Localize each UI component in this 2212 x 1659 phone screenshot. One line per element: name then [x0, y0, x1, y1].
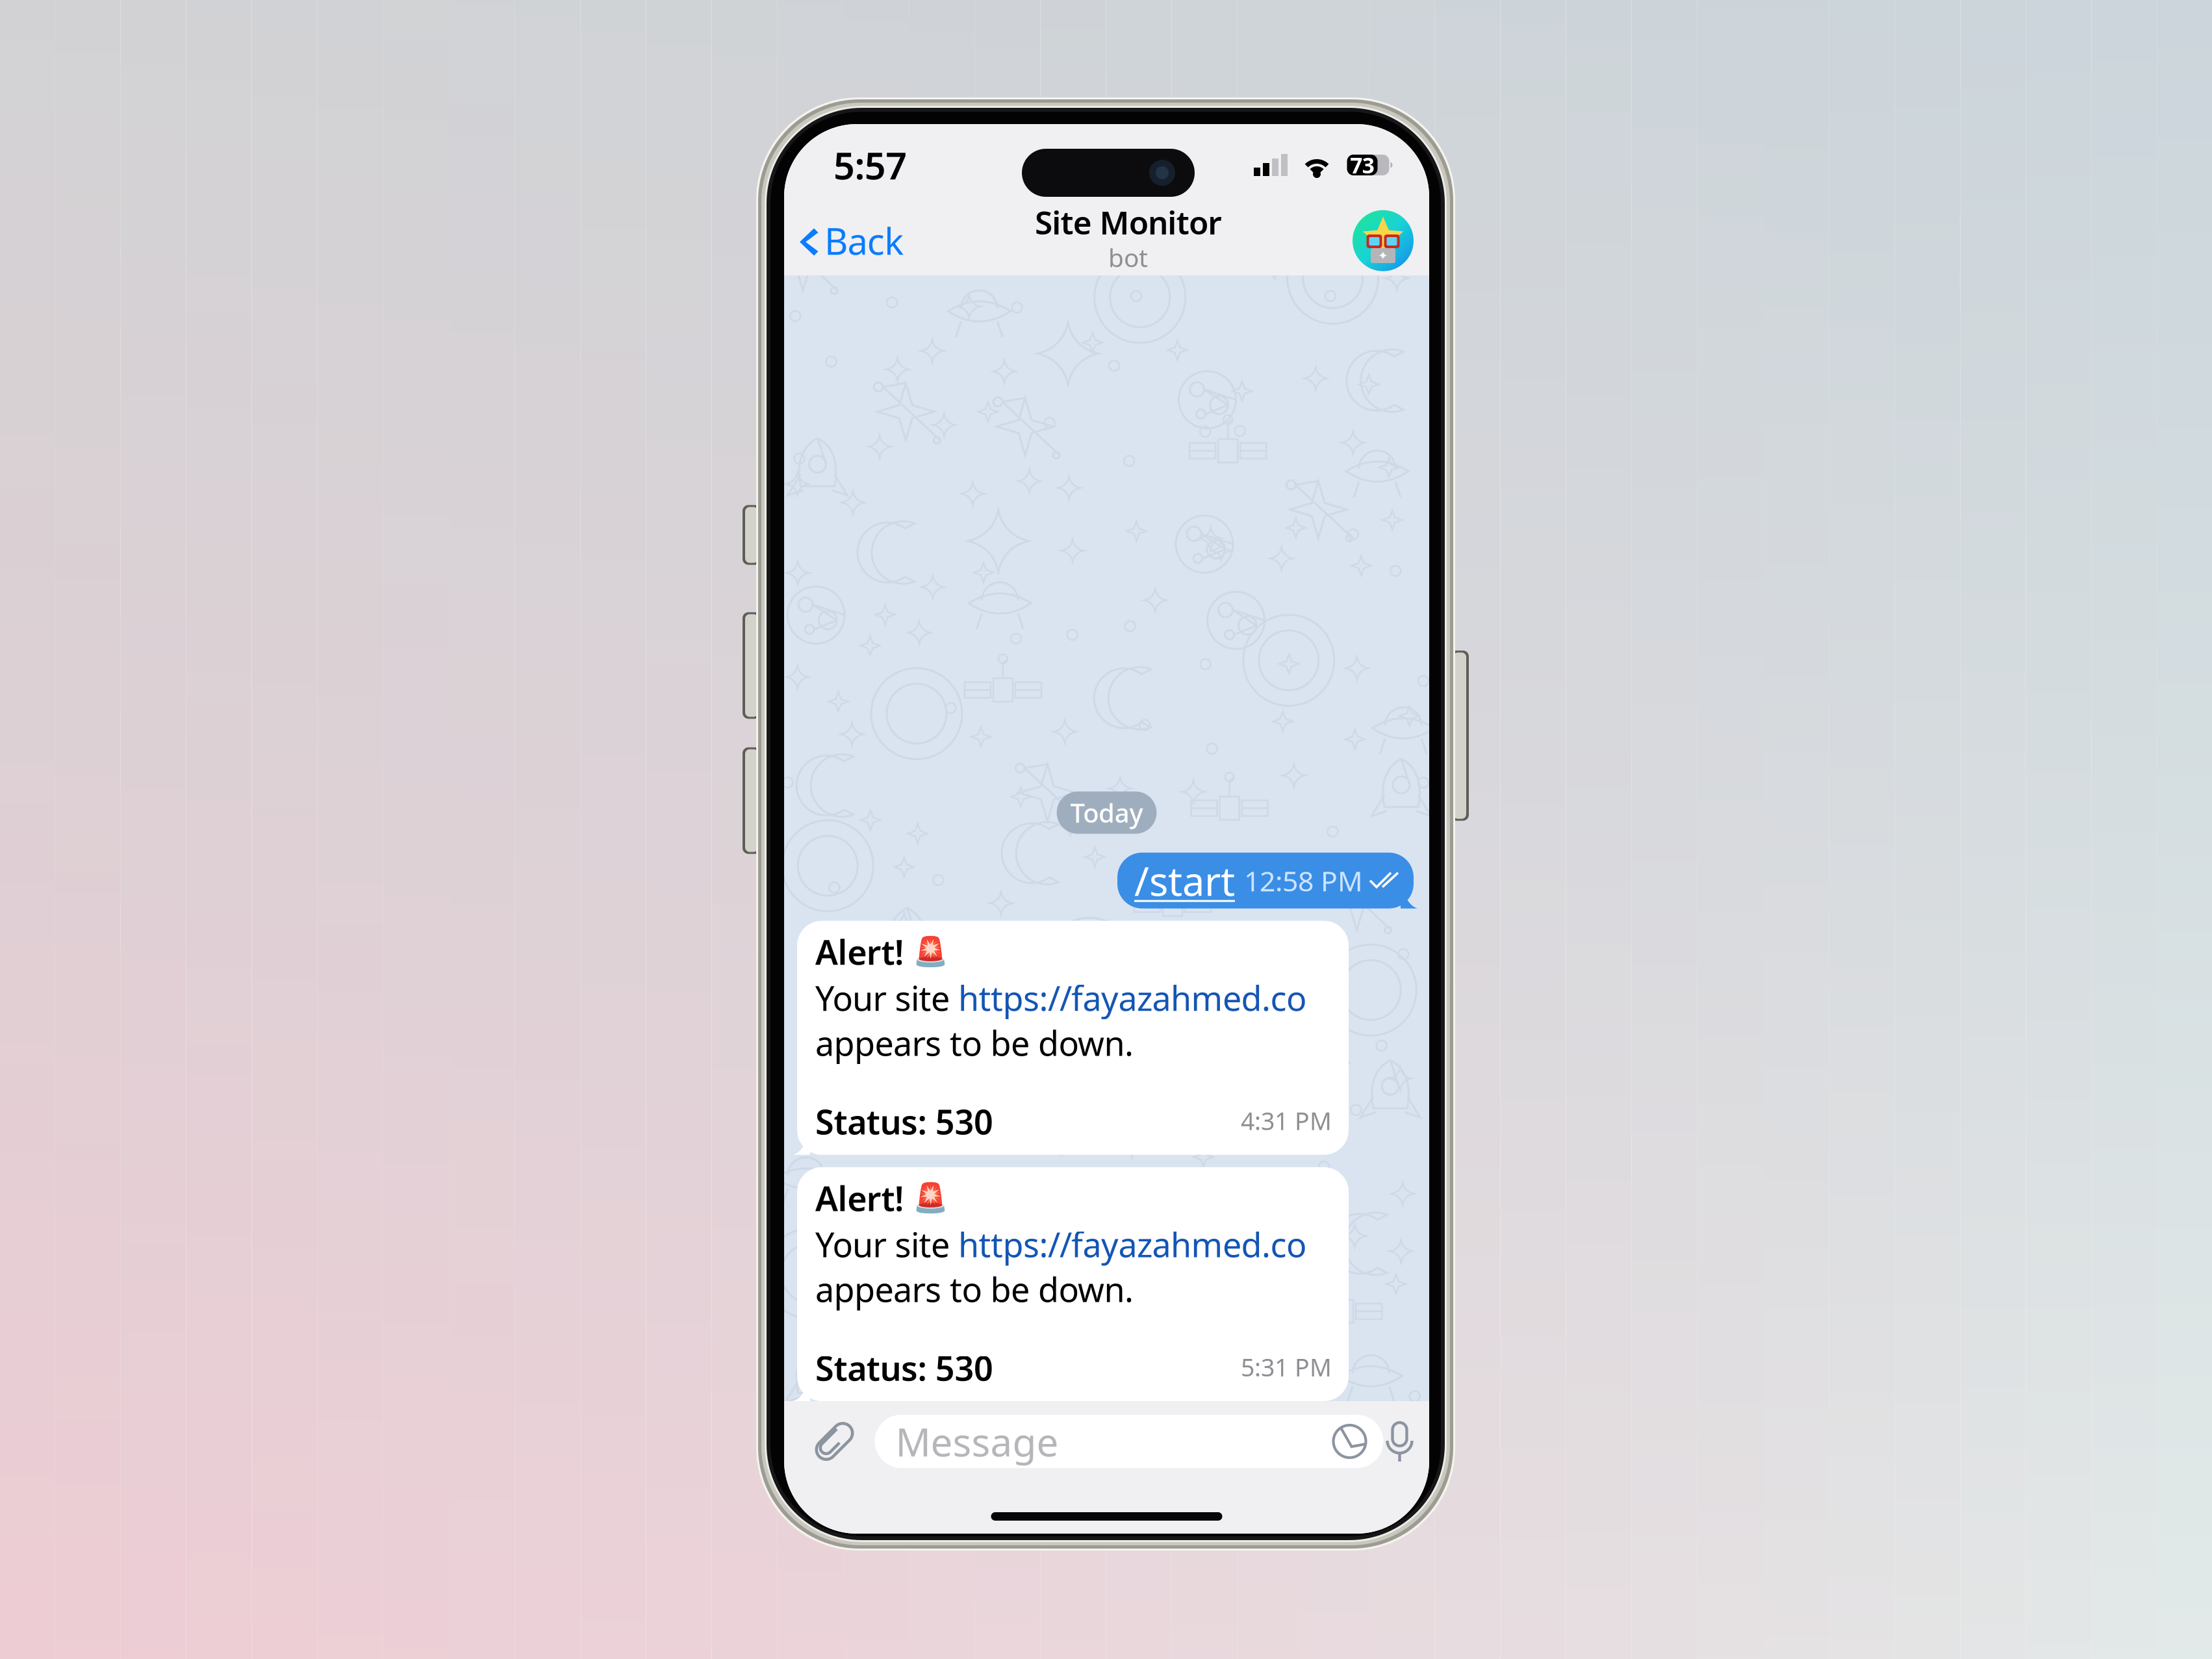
staticText: Status: 530	[815, 1099, 993, 1144]
staticText: Back	[824, 217, 904, 265]
button[interactable]: Attach	[814, 1419, 855, 1464]
staticText: Alert!	[815, 1176, 912, 1220]
staticText: Your site https:/⁠/⁠fayazahmed.co appear…	[815, 1222, 1306, 1311]
staticText: Alert!	[815, 929, 912, 974]
staticText: Site Monitor	[1035, 201, 1222, 243]
staticText: 🚨	[912, 1182, 948, 1214]
staticText: Status: 530	[815, 1345, 993, 1390]
staticText: 5:31 PM	[1241, 1351, 1332, 1383]
staticText: 12:58 PM	[1244, 862, 1363, 899]
staticText: bot	[1108, 241, 1148, 274]
staticText: ✦	[1378, 249, 1388, 262]
staticText: Message	[896, 1416, 1059, 1467]
staticText: 🚨	[912, 935, 948, 968]
staticText: Today	[1070, 795, 1143, 830]
button[interactable]: Profile	[1353, 210, 1414, 271]
button[interactable]: Back	[784, 206, 904, 275]
staticText: 5:57	[833, 140, 907, 190]
staticText: 4:31 PM	[1241, 1105, 1332, 1137]
button[interactable]: Stickers	[1331, 1423, 1368, 1460]
button[interactable]: Record voice message	[1383, 1419, 1416, 1464]
staticText: 73	[1350, 151, 1374, 179]
staticText: /start	[1134, 854, 1235, 907]
staticText: Your site https:/⁠/⁠fayazahmed.co appear…	[815, 975, 1306, 1065]
